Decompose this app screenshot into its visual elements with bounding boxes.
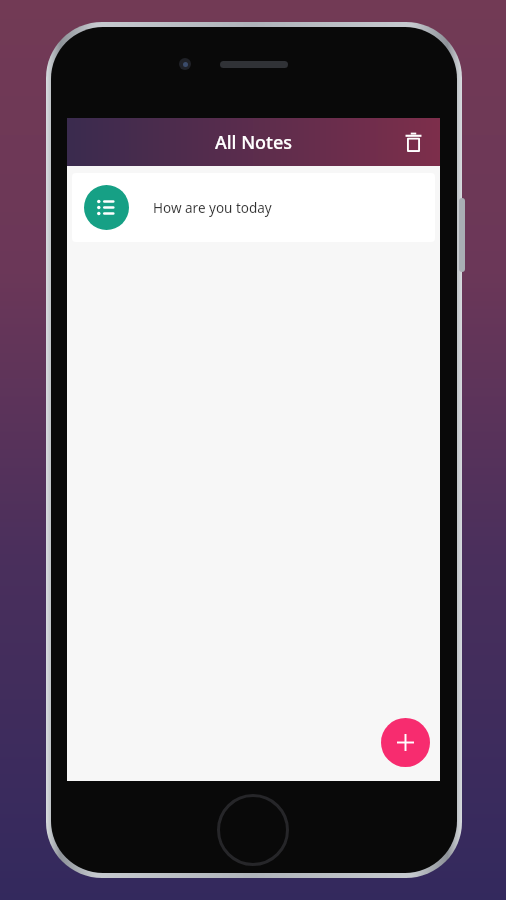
staticText: All Notes [67,130,440,155]
button[interactable]: How are you today [72,173,435,242]
button[interactable]: Add note [381,718,430,767]
staticText: How are you today [153,199,272,217]
button[interactable]: Delete [392,121,434,163]
